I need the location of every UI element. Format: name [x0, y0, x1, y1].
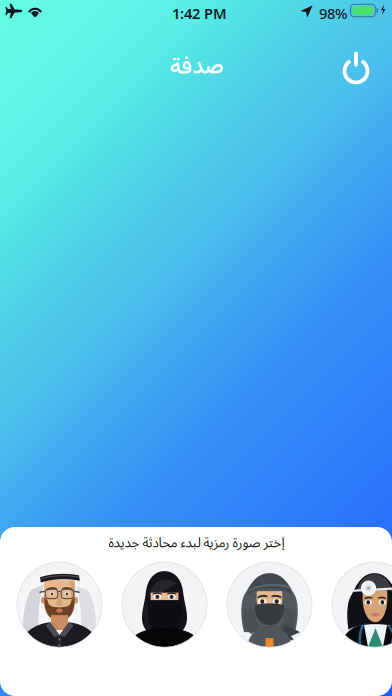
staticText: إختر صورة رمزية لبدء محادثة جديدة	[108, 533, 284, 551]
staticText: صدفة	[169, 50, 223, 86]
button[interactable]: Avatar 1	[17, 562, 102, 647]
button[interactable]: Power	[334, 46, 378, 90]
button[interactable]: Avatar 4	[332, 562, 392, 647]
button[interactable]: Avatar 3	[227, 562, 312, 647]
staticText: 1:42 PM	[172, 3, 227, 23]
button[interactable]: Avatar 2	[122, 562, 207, 647]
staticText: 98%	[319, 3, 347, 23]
